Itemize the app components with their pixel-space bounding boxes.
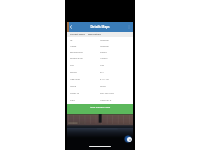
staticText: Current Maps: [70, 33, 85, 36]
button[interactable]: Back: [67, 22, 75, 32]
staticText: Name: [70, 45, 77, 48]
button[interactable]: ID: [67, 37, 133, 43]
button[interactable]: Order To: [67, 90, 133, 97]
staticText: Calls: [70, 99, 75, 102]
staticText: 136572: [100, 57, 108, 60]
button[interactable]: City: [67, 62, 133, 69]
staticText: Period: [70, 71, 77, 74]
button[interactable]: My location: [124, 135, 132, 143]
button[interactable]: Map Details Here: [67, 104, 133, 114]
staticText: Mood: [70, 85, 76, 88]
staticText: Mumbai: [100, 39, 109, 42]
staticText: Mumbai: [100, 45, 109, 48]
staticText: Map Details Here: [90, 105, 111, 108]
button[interactable]: Name: [67, 43, 133, 49]
staticText: Relationship: [70, 51, 83, 54]
staticText: New Start: [70, 78, 81, 81]
button[interactable]: Calls: [67, 97, 133, 104]
staticText: Distance Km: [70, 57, 83, 60]
button[interactable]: Mood: [67, 83, 133, 90]
button[interactable]: New Start: [67, 76, 133, 83]
staticText: Part Top Area: [100, 92, 114, 95]
button[interactable]: Period: [67, 69, 133, 76]
staticText: IND: [100, 64, 105, 67]
button[interactable]: More options: [125, 22, 133, 32]
staticText: Friend: [100, 51, 107, 54]
staticText: 971: [100, 71, 104, 74]
staticText: Map Details: [88, 33, 101, 36]
staticText: 6.111.95: [100, 78, 109, 81]
button[interactable]: Relationship: [67, 49, 133, 55]
staticText: ID: [70, 39, 73, 42]
staticText: City: [70, 64, 74, 67]
staticText: Good: [100, 85, 106, 88]
staticText: NG05161.8: [100, 99, 112, 102]
staticText: Order To: [70, 92, 80, 95]
staticText: Details Maps: [75, 25, 125, 29]
button[interactable]: Distance Km: [67, 55, 133, 62]
